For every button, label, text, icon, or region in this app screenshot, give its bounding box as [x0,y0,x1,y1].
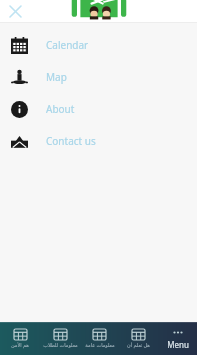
button[interactable]: Calendar [0,29,197,61]
button[interactable]: هل تعلم أن [119,322,158,355]
button[interactable]: هم الأمن [0,322,40,355]
button[interactable]: معلومات للطلاب [40,322,80,355]
button[interactable]: Map [0,61,197,93]
staticText: هل تعلم أن [127,342,150,349]
button[interactable]: Close [4,0,26,22]
button[interactable]: Menu [158,322,197,355]
button[interactable]: معلومات عامة [80,322,119,355]
button[interactable]: App logo [68,0,130,19]
staticText: Map [46,70,67,84]
button[interactable]: About [0,93,197,125]
staticText: Contact us [46,134,96,148]
staticText: About [46,102,75,116]
staticText: هم الأمن [11,342,29,349]
staticText: معلومات للطلاب [43,342,78,349]
button[interactable]: Contact us [0,125,197,157]
staticText: Menu [167,339,189,350]
staticText: Calendar [46,38,89,52]
staticText: معلومات عامة [85,342,115,349]
